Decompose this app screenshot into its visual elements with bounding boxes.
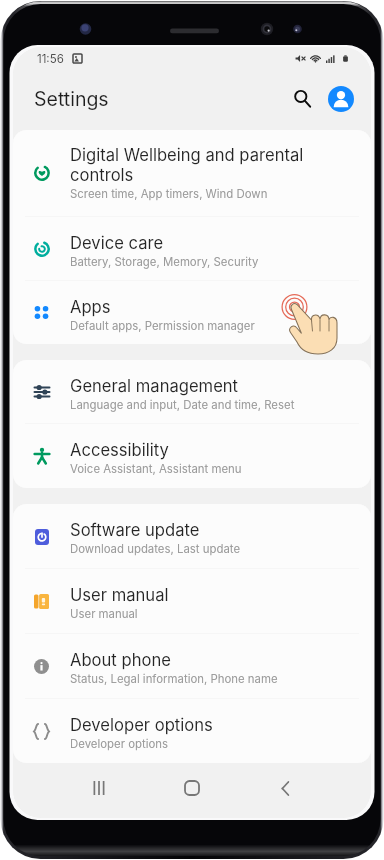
staticText: Digital Wellbeing and parental controls (70, 145, 361, 185)
staticText: Apps (70, 297, 111, 317)
button[interactable]: Back (262, 765, 308, 811)
staticText: Settings (34, 87, 109, 111)
button[interactable]: Accessibility (13, 424, 371, 488)
staticText: Download updates, Last update (70, 542, 241, 556)
button[interactable]: Device care (13, 217, 371, 280)
button[interactable]: User manual (13, 569, 371, 633)
staticText: Software update (70, 520, 200, 540)
staticText: User manual (70, 585, 169, 605)
staticText: About phone (70, 650, 171, 670)
button[interactable]: Home (169, 765, 215, 811)
staticText: Screen time, App timers, Wind Down (70, 187, 268, 201)
staticText: Accessibility (70, 440, 169, 460)
staticText: Voice Assistant, Assistant menu (70, 462, 242, 476)
staticText: Status, Legal information, Phone name (70, 672, 278, 686)
staticText: General management (70, 376, 239, 396)
button[interactable]: Search (284, 80, 321, 117)
button[interactable]: About phone (13, 634, 371, 698)
button[interactable]: Recents (76, 765, 122, 811)
staticText: Default apps, Permission manager (70, 319, 255, 333)
staticText: 11:56 (37, 52, 64, 66)
staticText: Device care (70, 233, 164, 253)
button[interactable]: Digital Wellbeing and parental controls (13, 130, 371, 216)
button[interactable]: General management (13, 360, 371, 423)
button[interactable]: Developer options (13, 699, 371, 763)
button[interactable]: Account (322, 80, 359, 117)
staticText: Language and input, Date and time, Reset (70, 398, 295, 412)
button[interactable]: Apps (13, 281, 371, 344)
staticText: Developer options (70, 737, 169, 751)
staticText: Battery, Storage, Memory, Security (70, 255, 259, 269)
staticText: User manual (70, 607, 138, 621)
button[interactable]: Software update (13, 504, 371, 568)
staticText: Developer options (70, 715, 213, 735)
